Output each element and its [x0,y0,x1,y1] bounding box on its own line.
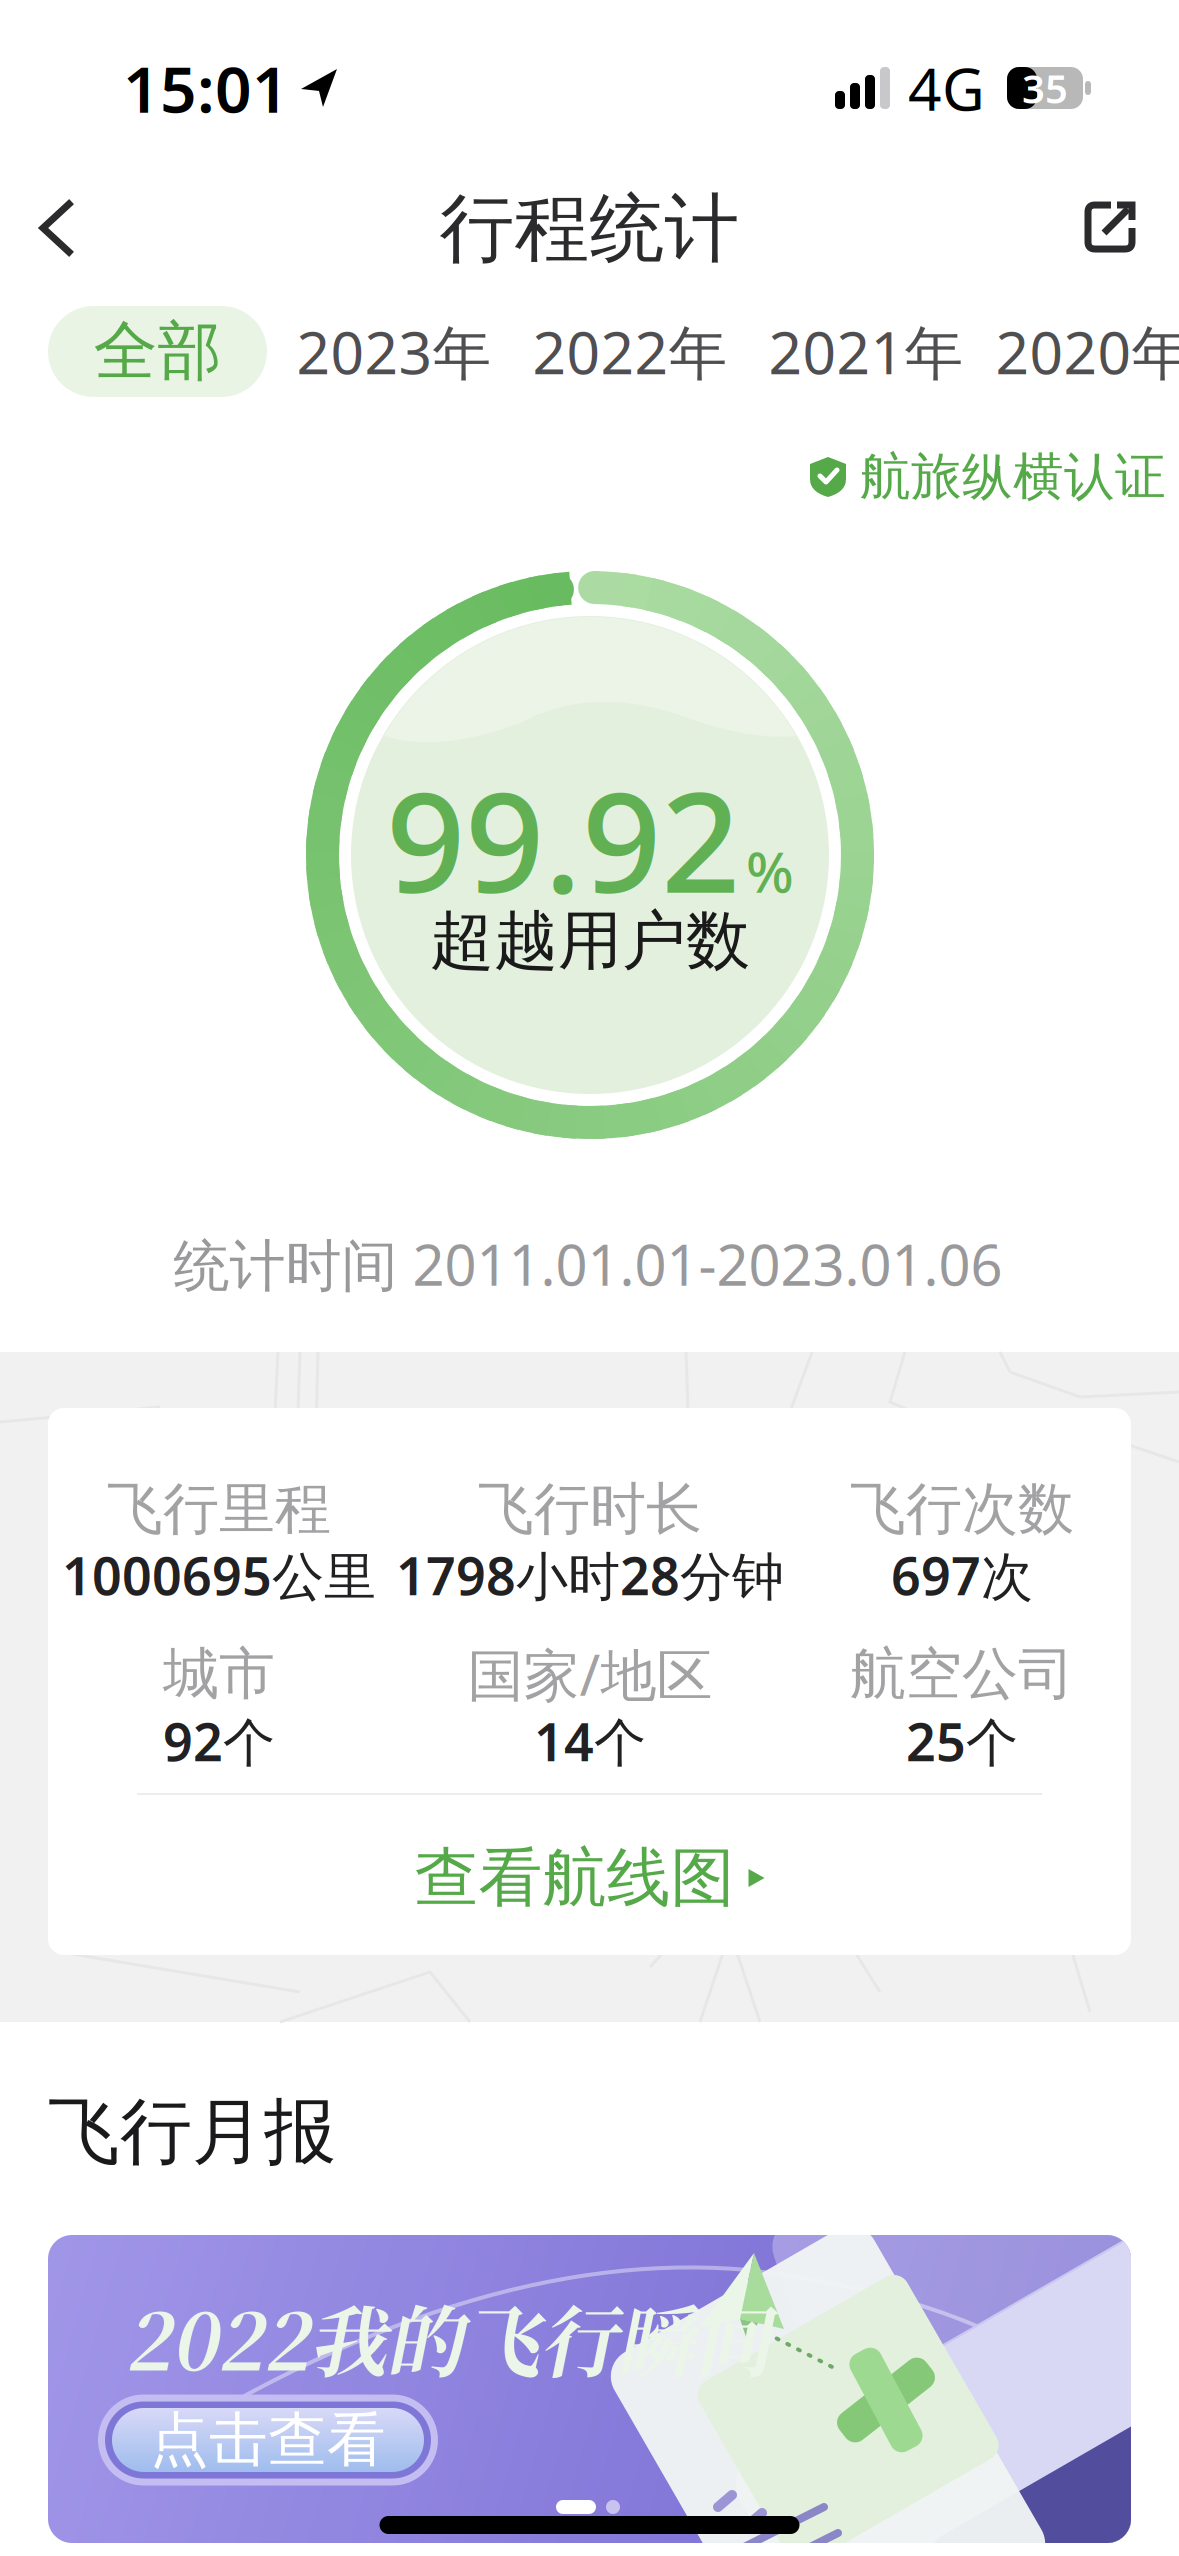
staticText: 92个 [163,1706,275,1776]
staticText: 2022年 [532,312,727,390]
staticText: 4G [908,49,985,127]
button[interactable]: 2022我的飞行瞬间 [48,2235,1131,2543]
staticText: 飞行次数 [850,1475,1074,1543]
staticText: 2021年 [768,312,963,390]
staticText: 1798小时28分钟 [396,1540,784,1610]
staticText: 航旅纵横认证 [860,446,1166,508]
staticText: 国家/地区 [467,1637,712,1711]
staticText: 点击查看 [150,2404,386,2476]
staticText: 15:01 [123,45,289,130]
staticText: 飞行月报 [48,2088,336,2176]
button[interactable]: 返回 [19,181,93,275]
staticText: 城市 [163,1640,275,1708]
staticText: 697次 [891,1540,1033,1610]
staticText: 超越用户数 [430,902,750,980]
staticText: 航空公司 [850,1640,1074,1708]
staticText: 统计时间 2011.01.01-2023.01.06 [173,1227,1002,1301]
staticText: 2023年 [296,312,491,390]
button[interactable]: 查看航线图 [390,1819,788,1937]
staticText: 35 [1022,61,1068,114]
button[interactable]: 2023年 [296,312,491,390]
button[interactable]: 2021年 [768,312,963,390]
staticText: 行程统计 [439,183,739,275]
staticText: 14个 [534,1706,646,1776]
button[interactable]: 分享 [1073,190,1147,264]
staticText: 1000695公里 [62,1540,376,1610]
staticText: 全部 [93,312,221,391]
staticText: 2020年 [995,312,1179,390]
staticText: 飞行时长 [478,1475,702,1543]
staticText: 查看航线图 [414,1839,734,1917]
button[interactable]: 点击查看 [98,2394,438,2485]
staticText: 25个 [906,1706,1018,1776]
staticText: 99.92 [386,747,740,931]
staticText: 飞行里程 [107,1475,331,1543]
staticText: 2022我的飞行瞬间 [125,2281,771,2392]
staticText: % [746,834,794,908]
button[interactable]: 2020年 [995,312,1179,390]
button[interactable]: 2022年 [532,312,727,390]
button[interactable]: 全部 [48,306,267,397]
